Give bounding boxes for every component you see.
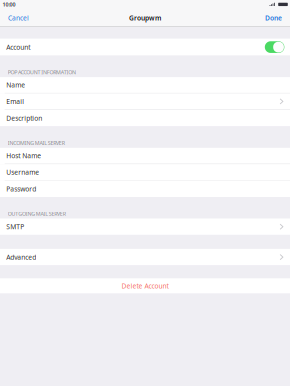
staticText: Delete Account: [121, 281, 168, 290]
staticText: Done: [265, 13, 282, 22]
staticText: POP ACCOUNT INFORMATION: [8, 69, 76, 76]
button[interactable]: Description: [0, 110, 290, 126]
button[interactable]: Advanced: [0, 249, 290, 265]
button[interactable]: Done: [257, 10, 290, 25]
button[interactable]: Cancel: [0, 10, 37, 25]
staticText: Cancel: [8, 13, 29, 22]
button[interactable]: Delete Account: [0, 278, 290, 293]
button[interactable]: SMTP: [0, 218, 290, 235]
staticText: OUTGOING MAIL SERVER: [8, 210, 66, 217]
staticText: Email: [6, 97, 24, 106]
staticText: INCOMING MAIL SERVER: [8, 139, 65, 146]
staticText: Host Name: [6, 151, 41, 160]
staticText: Description: [6, 114, 42, 123]
staticText: Password: [6, 184, 36, 193]
staticText: Username: [6, 168, 39, 177]
staticText: Advanced: [6, 253, 36, 262]
button[interactable]: Username: [0, 164, 290, 181]
button[interactable]: Name: [0, 77, 290, 93]
button[interactable]: Account: [265, 41, 284, 53]
button[interactable]: Email: [0, 93, 290, 110]
staticText: SMTP: [6, 222, 24, 231]
staticText: Account: [6, 43, 30, 52]
button[interactable]: Host Name: [0, 148, 290, 164]
staticText: Groupwm: [129, 13, 161, 22]
button[interactable]: Password: [0, 181, 290, 197]
staticText: Name: [6, 81, 25, 89]
staticText: 10:00: [3, 1, 16, 8]
